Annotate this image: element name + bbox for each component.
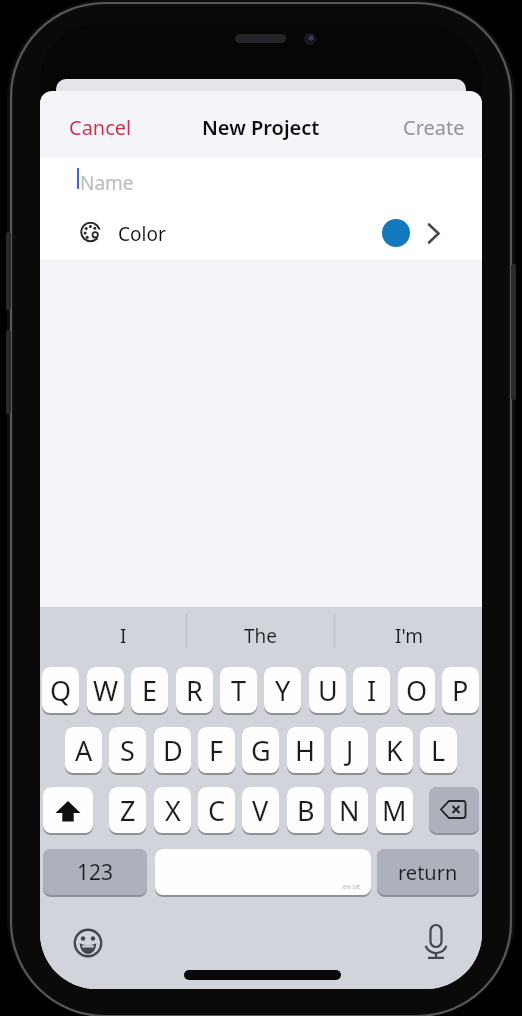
staticText: F [209, 732, 224, 769]
button[interactable]: Z [109, 787, 146, 833]
button[interactable]: J [331, 727, 368, 773]
button[interactable]: Color [40, 208, 482, 259]
staticText: E [142, 672, 158, 709]
staticText: H [295, 732, 316, 769]
button[interactable]: B [287, 787, 324, 833]
staticText: X [165, 792, 181, 829]
button[interactable]: 123 [43, 849, 147, 895]
staticText: J [346, 732, 354, 769]
staticText: N [339, 792, 360, 829]
staticText: return [398, 859, 458, 886]
button[interactable]: P [442, 667, 479, 713]
staticText: A [75, 732, 93, 769]
button[interactable]: G [242, 727, 279, 773]
button[interactable]: O [398, 667, 435, 713]
staticText: C [208, 792, 226, 829]
staticText: I [367, 672, 377, 709]
staticText: Y [275, 672, 291, 709]
button[interactable]: D [154, 727, 191, 773]
staticText: R [186, 672, 203, 709]
staticText: Z [120, 792, 136, 829]
staticText: B [297, 792, 315, 829]
staticText: M [382, 792, 407, 829]
button[interactable]: N [331, 787, 368, 833]
button[interactable]: R [176, 667, 213, 713]
button[interactable]: W [87, 667, 124, 713]
button[interactable]: Cancel [60, 112, 140, 142]
staticText: G [251, 732, 271, 769]
button[interactable]: V [242, 787, 279, 833]
button[interactable]: X [154, 787, 191, 833]
button[interactable]: Y [264, 667, 301, 713]
staticText: O [406, 672, 428, 709]
button[interactable]: E [131, 667, 168, 713]
button[interactable] [155, 849, 371, 895]
button[interactable] [43, 787, 93, 833]
staticText: Color [118, 221, 166, 247]
staticText: T [231, 672, 247, 709]
staticText: L [431, 732, 446, 769]
staticText: W [93, 672, 119, 709]
button[interactable]: T [220, 667, 257, 713]
staticText: The [244, 623, 278, 649]
button[interactable]: F [198, 727, 235, 773]
staticText: Create [403, 114, 465, 141]
staticText: V [252, 792, 269, 829]
staticText: I [120, 623, 127, 649]
button[interactable]: C [198, 787, 235, 833]
button[interactable] [424, 925, 448, 959]
staticText: EN DE [343, 883, 361, 891]
button[interactable]: M [376, 787, 413, 833]
button[interactable]: K [376, 727, 413, 773]
staticText: New Project [202, 114, 320, 141]
button[interactable]: Q [42, 667, 79, 713]
button[interactable] [429, 787, 479, 833]
button[interactable]: S [109, 727, 146, 773]
staticText: 123 [77, 858, 114, 887]
button[interactable]: I [353, 667, 390, 713]
button[interactable]: H [287, 727, 324, 773]
staticText: D [163, 732, 183, 769]
button[interactable]: return [377, 849, 479, 895]
staticText: U [318, 672, 338, 709]
staticText: Cancel [69, 114, 132, 141]
button[interactable]: U [309, 667, 346, 713]
button[interactable]: Create [398, 112, 470, 142]
staticText: Name [80, 170, 134, 196]
staticText: I'm [395, 623, 423, 649]
button[interactable]: L [420, 727, 457, 773]
staticText: P [452, 672, 469, 709]
button[interactable] [73, 928, 103, 958]
staticText: K [386, 732, 403, 769]
button[interactable]: A [65, 727, 102, 773]
staticText: S [120, 732, 135, 769]
staticText: Q [50, 672, 72, 709]
